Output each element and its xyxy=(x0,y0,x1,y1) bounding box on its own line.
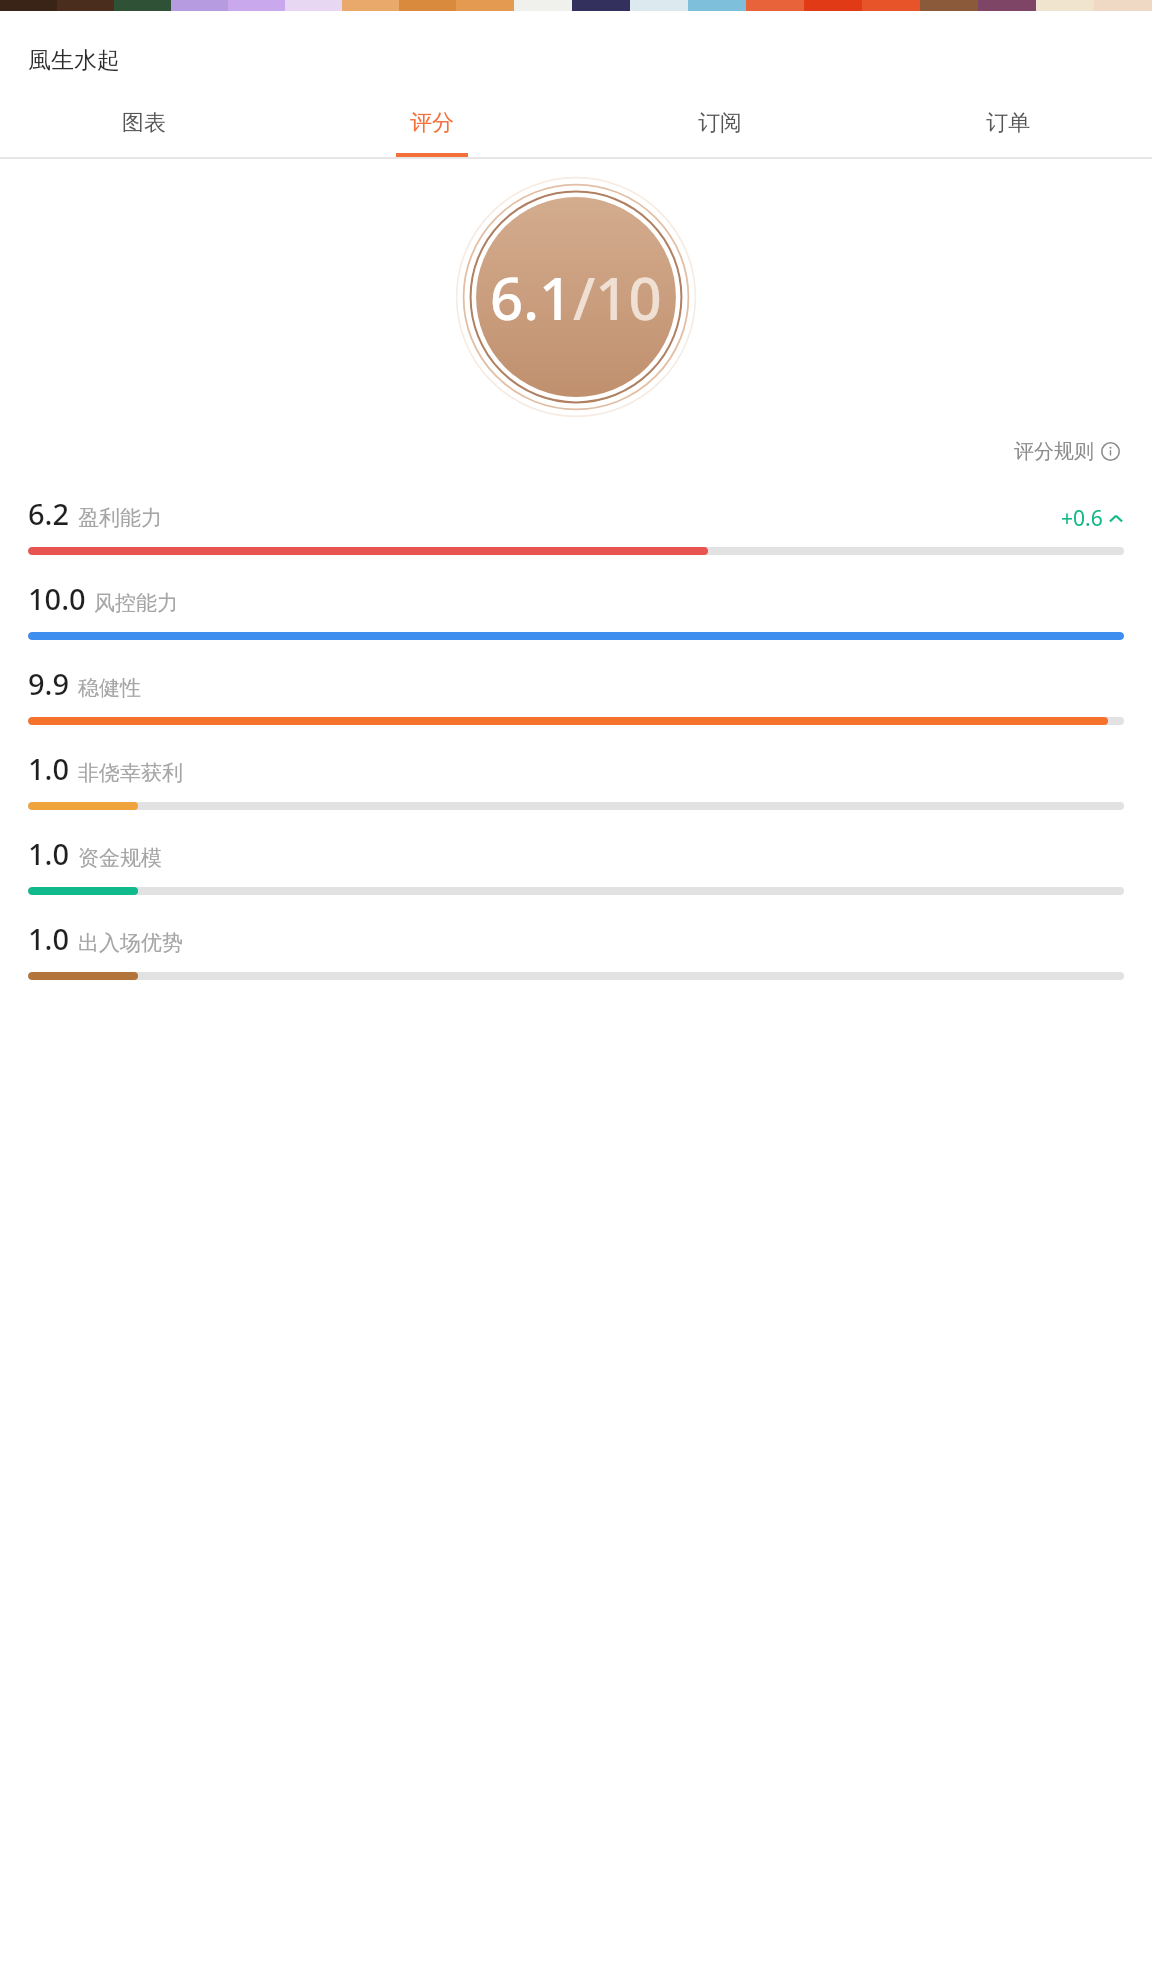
staticText: 稳健性 xyxy=(78,675,141,701)
staticText: 资金规模 xyxy=(78,845,162,871)
button[interactable]: 6.2 xyxy=(0,494,1152,555)
staticText: 10.0 xyxy=(28,579,86,618)
staticText: 风控能力 xyxy=(94,590,178,616)
button[interactable]: 1.0 xyxy=(0,919,1152,980)
button[interactable]: 评分 xyxy=(288,109,576,157)
staticText: 盈利能力 xyxy=(78,505,162,531)
staticText: 评分规则 xyxy=(1014,439,1094,464)
staticText: 图表 xyxy=(122,109,166,137)
button[interactable]: 10.0 xyxy=(0,579,1152,640)
button[interactable]: 评分规则 xyxy=(1010,435,1124,468)
button[interactable]: 图表 xyxy=(0,109,288,157)
button[interactable]: 订单 xyxy=(864,109,1152,157)
button[interactable]: 9.9 xyxy=(0,664,1152,725)
staticText: 9.9 xyxy=(28,664,70,703)
staticText: +0.6 xyxy=(1061,504,1103,533)
button[interactable]: 1.0 xyxy=(0,834,1152,895)
staticText: 6.2 xyxy=(28,494,70,533)
staticText: 6.1 xyxy=(490,258,573,337)
staticText: 订阅 xyxy=(698,109,742,137)
staticText: 评分 xyxy=(410,109,454,137)
other: 评分规则说明 xyxy=(1101,442,1120,461)
staticText: 1.0 xyxy=(28,749,70,788)
staticText: /10 xyxy=(573,258,662,337)
staticText: 1.0 xyxy=(28,834,70,873)
staticText: 1.0 xyxy=(28,919,70,958)
staticText: 出入场优势 xyxy=(78,930,183,956)
button[interactable]: 订阅 xyxy=(576,109,864,157)
staticText: 風生水起 xyxy=(28,46,120,75)
staticText: 订单 xyxy=(986,109,1030,137)
staticText: 非侥幸获利 xyxy=(78,760,183,786)
button[interactable]: 1.0 xyxy=(0,749,1152,810)
